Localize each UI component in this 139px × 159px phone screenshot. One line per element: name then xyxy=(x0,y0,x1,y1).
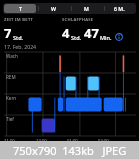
staticText: SCHLAFPHASE xyxy=(62,17,94,23)
staticText: 7 xyxy=(4,24,12,42)
staticText: 6 M. xyxy=(114,5,125,12)
staticText: Std. xyxy=(71,34,82,41)
staticText: Kern xyxy=(6,95,17,101)
staticText: W xyxy=(51,5,56,12)
staticText: 23:00 xyxy=(36,138,47,144)
staticText: Tief xyxy=(6,116,14,122)
button[interactable]: Info xyxy=(115,33,123,41)
staticText: 01:00 xyxy=(67,138,78,144)
staticText: 47 xyxy=(84,24,99,42)
staticText: T xyxy=(19,5,22,12)
staticText: 4 xyxy=(62,24,70,42)
staticText: M xyxy=(84,5,89,12)
button[interactable]: T xyxy=(4,4,36,13)
button[interactable]: M xyxy=(71,4,102,13)
staticText: Min. xyxy=(100,34,112,41)
staticText: Std. xyxy=(13,34,24,41)
staticText: 17. Feb. 2024 xyxy=(4,43,37,50)
staticText: 750x790 143kb JPEG xyxy=(13,143,127,158)
staticText: ZEIT IM BETT xyxy=(4,17,34,23)
staticText: 21:00 xyxy=(4,138,15,144)
button[interactable]: 6 M. xyxy=(104,4,135,13)
staticText: Wach xyxy=(6,53,18,59)
button[interactable]: W xyxy=(38,4,69,13)
staticText: REM xyxy=(6,74,16,80)
staticText: 03:00 xyxy=(98,138,109,144)
